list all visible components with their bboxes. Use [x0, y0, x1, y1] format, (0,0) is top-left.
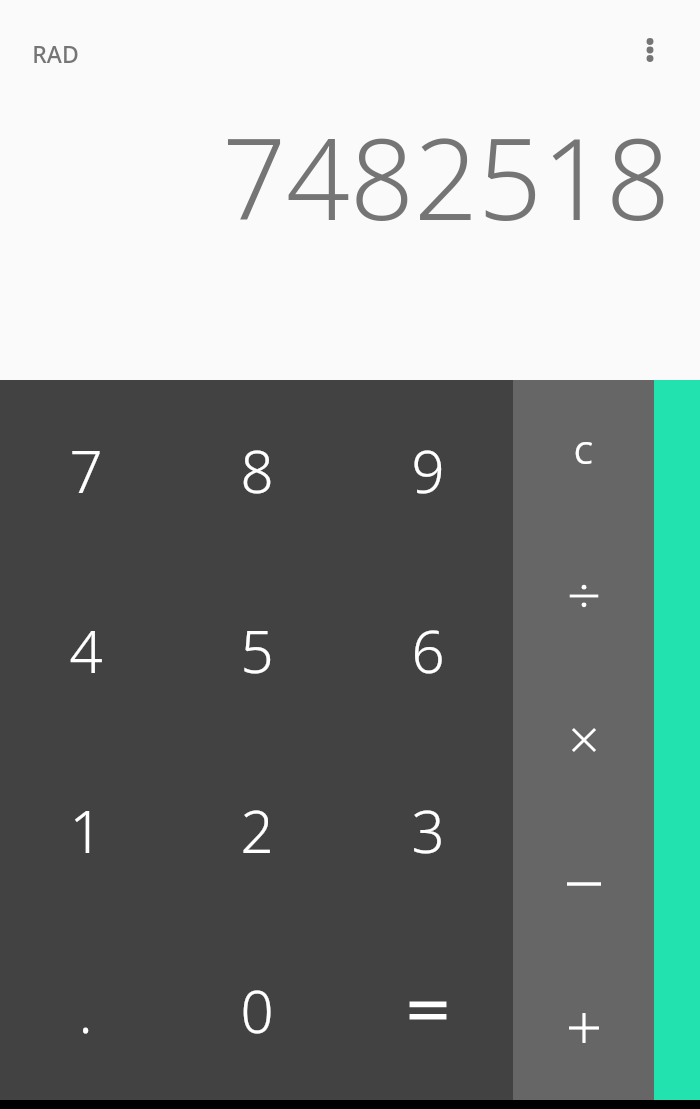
staticText: 9 — [411, 431, 445, 510]
staticText: RAD — [32, 38, 79, 69]
staticText: 1 — [69, 791, 103, 870]
button[interactable]: 6 — [342, 560, 513, 740]
button[interactable] — [513, 668, 654, 812]
staticText: 4 — [69, 611, 103, 690]
button[interactable]: 8 — [171, 380, 342, 560]
button[interactable]: 1 — [0, 740, 171, 920]
staticText: 2 — [240, 791, 274, 870]
staticText: 8 — [240, 431, 274, 510]
button[interactable]: C — [513, 380, 654, 524]
staticText: 7 — [69, 431, 103, 510]
button[interactable]: More options — [622, 22, 678, 78]
staticText: 5 — [240, 611, 274, 690]
button[interactable]: 4 — [0, 560, 171, 740]
button[interactable]: 7 — [0, 380, 171, 560]
staticText: 0 — [240, 971, 274, 1050]
staticText: . — [78, 971, 93, 1050]
staticText: C — [574, 432, 593, 473]
button[interactable]: 2 — [171, 740, 342, 920]
staticText: 6 — [411, 611, 445, 690]
button[interactable]: 0 — [171, 920, 342, 1100]
button[interactable]: 9 — [342, 380, 513, 560]
button[interactable]: . — [0, 920, 171, 1100]
staticText: 7482518 — [222, 100, 670, 253]
button[interactable]: 5 — [171, 560, 342, 740]
button[interactable] — [513, 812, 654, 956]
staticText: 3 — [411, 791, 445, 870]
button[interactable]: RAD — [18, 30, 93, 77]
button[interactable]: 3 — [342, 740, 513, 920]
button[interactable] — [342, 920, 513, 1100]
button[interactable] — [513, 956, 654, 1100]
button[interactable] — [513, 524, 654, 668]
